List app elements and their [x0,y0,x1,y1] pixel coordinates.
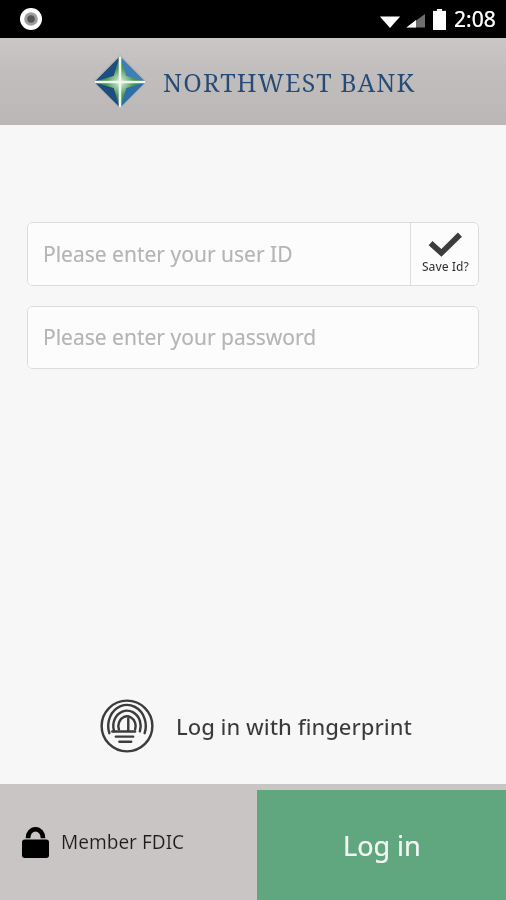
button[interactable]: Please enter your user ID [27,222,410,286]
staticText: 2:08 [454,5,496,34]
staticText: Member FDIC [61,829,185,855]
button[interactable]: Please enter your password [27,306,479,369]
staticText: NORTHWEST BANK [163,65,416,99]
staticText: Log in [343,827,421,864]
button[interactable]: Member FDIC [22,826,185,858]
staticText: Save Id? [422,258,469,274]
button[interactable]: Log in [257,790,506,900]
button[interactable]: Save Id [411,222,479,286]
staticText: Please enter your user ID [43,240,293,269]
staticText: Please enter your password [43,323,317,352]
staticText: Log in with fingerprint [176,711,412,741]
button[interactable]: Log in with fingerprint [96,695,416,757]
